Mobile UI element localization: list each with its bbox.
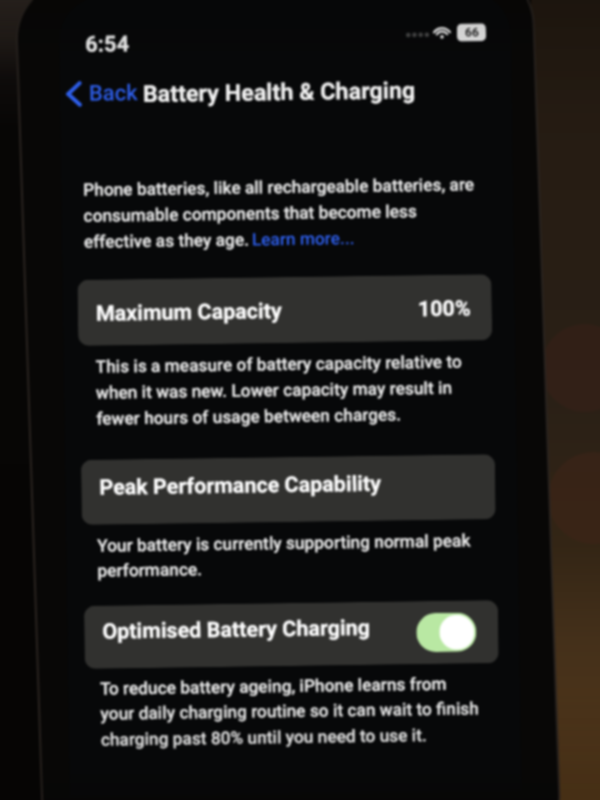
button[interactable]: Back [64, 78, 138, 109]
button[interactable]: Peak Performance Capability [81, 454, 496, 525]
staticText: Battery Health & Charging [143, 76, 416, 107]
staticText: 100% [418, 295, 471, 321]
staticText: 66 [465, 25, 479, 39]
staticText: Maximum Capacity [96, 298, 282, 326]
staticText: Back [89, 80, 138, 107]
staticText: Your battery is currently supporting nor… [97, 530, 498, 581]
staticText: Phone batteries, like all rechargeable b… [83, 174, 488, 252]
staticText: This is a measure of battery capacity re… [95, 351, 496, 429]
button[interactable]: Optimised Battery Charging [416, 612, 477, 652]
other: Back [64, 79, 84, 109]
button[interactable]: Optimised Battery Charging [84, 600, 499, 669]
staticText: 6:54 [85, 31, 130, 58]
staticText: Optimised Battery Charging [102, 615, 370, 644]
staticText: Peak Performance Capability [99, 471, 381, 500]
staticText: To reduce battery ageing, iPhone learns … [100, 673, 501, 750]
button[interactable]: Learn more... [252, 228, 355, 249]
button[interactable]: Maximum Capacity [77, 274, 492, 346]
